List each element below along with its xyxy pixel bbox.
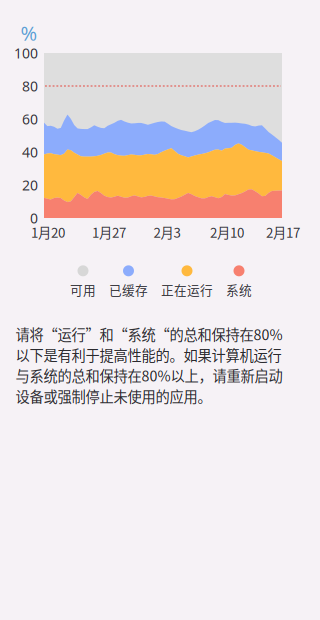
staticText: 正在运行 [161,280,213,299]
button[interactable]: 正在运行 [161,265,213,299]
button[interactable]: 已缓存 [109,265,148,299]
staticText: 100 [14,43,38,63]
staticText: 2月17 [266,222,300,242]
staticText: 已缓存 [109,280,148,299]
staticText: 可用 [70,280,96,299]
staticText: 2月10 [210,222,244,242]
staticText: 60 [22,109,38,129]
staticText: 请将“运行”和“系统“的总和保持在80% 以下是有利于提高性能的。如果计算机运行… [15,324,282,406]
button[interactable]: 可用 [70,265,96,299]
button[interactable]: 系统 [226,265,252,299]
staticText: 40 [22,142,38,162]
staticText: 20 [22,175,38,195]
staticText: 系统 [226,280,252,299]
staticText: 80 [22,76,38,96]
staticText: 0 [30,208,38,228]
staticText: 1月20 [31,222,65,242]
staticText: % [20,19,37,47]
staticText: 1月27 [92,222,126,242]
staticText: 2月3 [153,222,180,242]
